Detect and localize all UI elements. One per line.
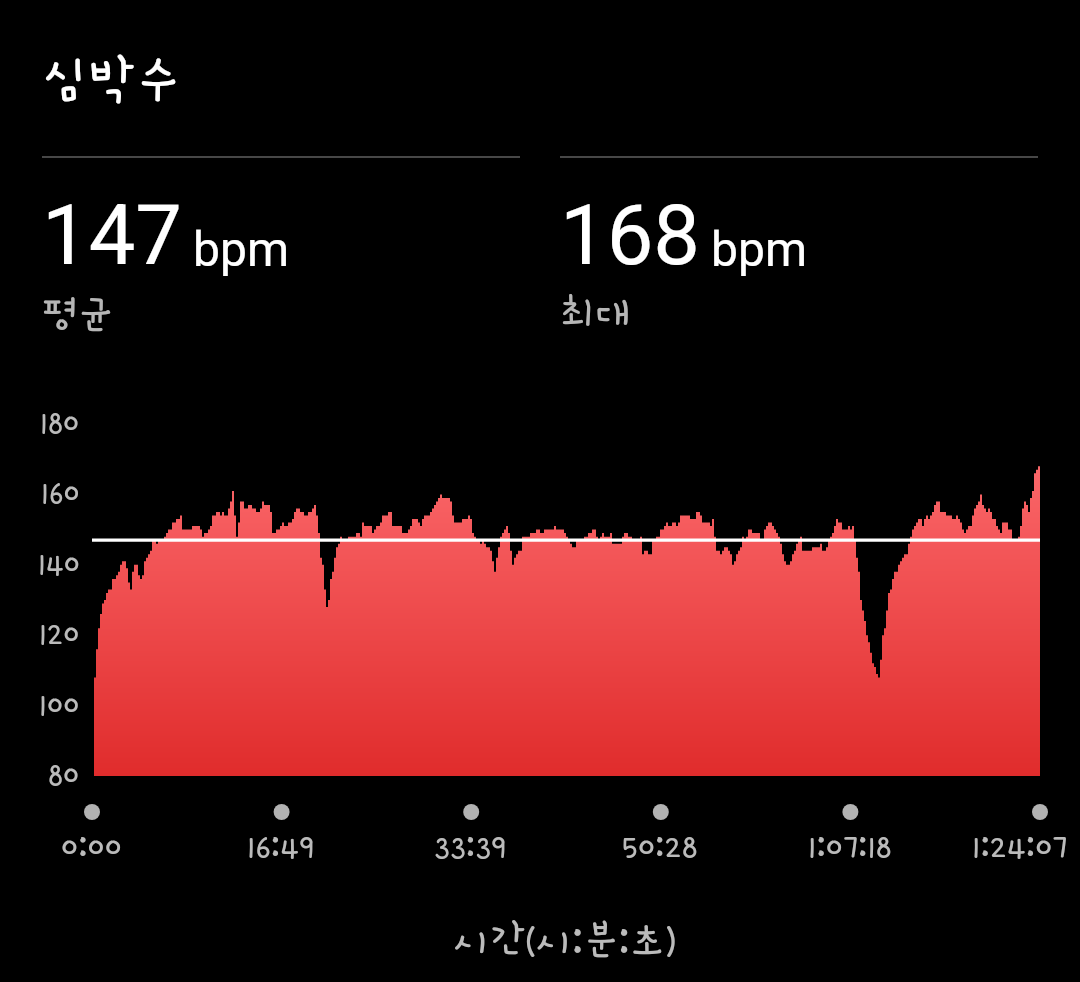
staticText: 160 xyxy=(41,476,80,511)
staticText: 시간(시:분:초) xyxy=(25,919,1080,963)
staticText: 16:49 xyxy=(247,828,315,865)
staticText: 평균 xyxy=(42,293,113,337)
staticText: 180 xyxy=(40,406,80,441)
staticText: 0:00 xyxy=(61,828,122,865)
staticText: 140 xyxy=(38,547,80,582)
staticText: 심박수 xyxy=(43,52,181,109)
button[interactable]: 168 xyxy=(560,156,1038,337)
staticText: 147 xyxy=(42,187,182,284)
staticText: 120 xyxy=(39,617,80,652)
button[interactable]: 147 xyxy=(42,156,520,337)
staticText: 1:24:07 xyxy=(972,828,1068,865)
button[interactable]: Heart rate graph, 80 to 180 bpm xyxy=(92,424,1040,776)
staticText: 100 xyxy=(39,688,80,723)
staticText: 168 xyxy=(560,187,700,284)
staticText: 최대 xyxy=(560,293,631,337)
staticText: bpm xyxy=(193,221,289,277)
staticText: 33:39 xyxy=(434,828,507,865)
staticText: bpm xyxy=(711,221,807,277)
staticText: 80 xyxy=(48,758,80,793)
staticText: 1:07:18 xyxy=(808,828,892,865)
staticText: 50:28 xyxy=(622,828,698,865)
